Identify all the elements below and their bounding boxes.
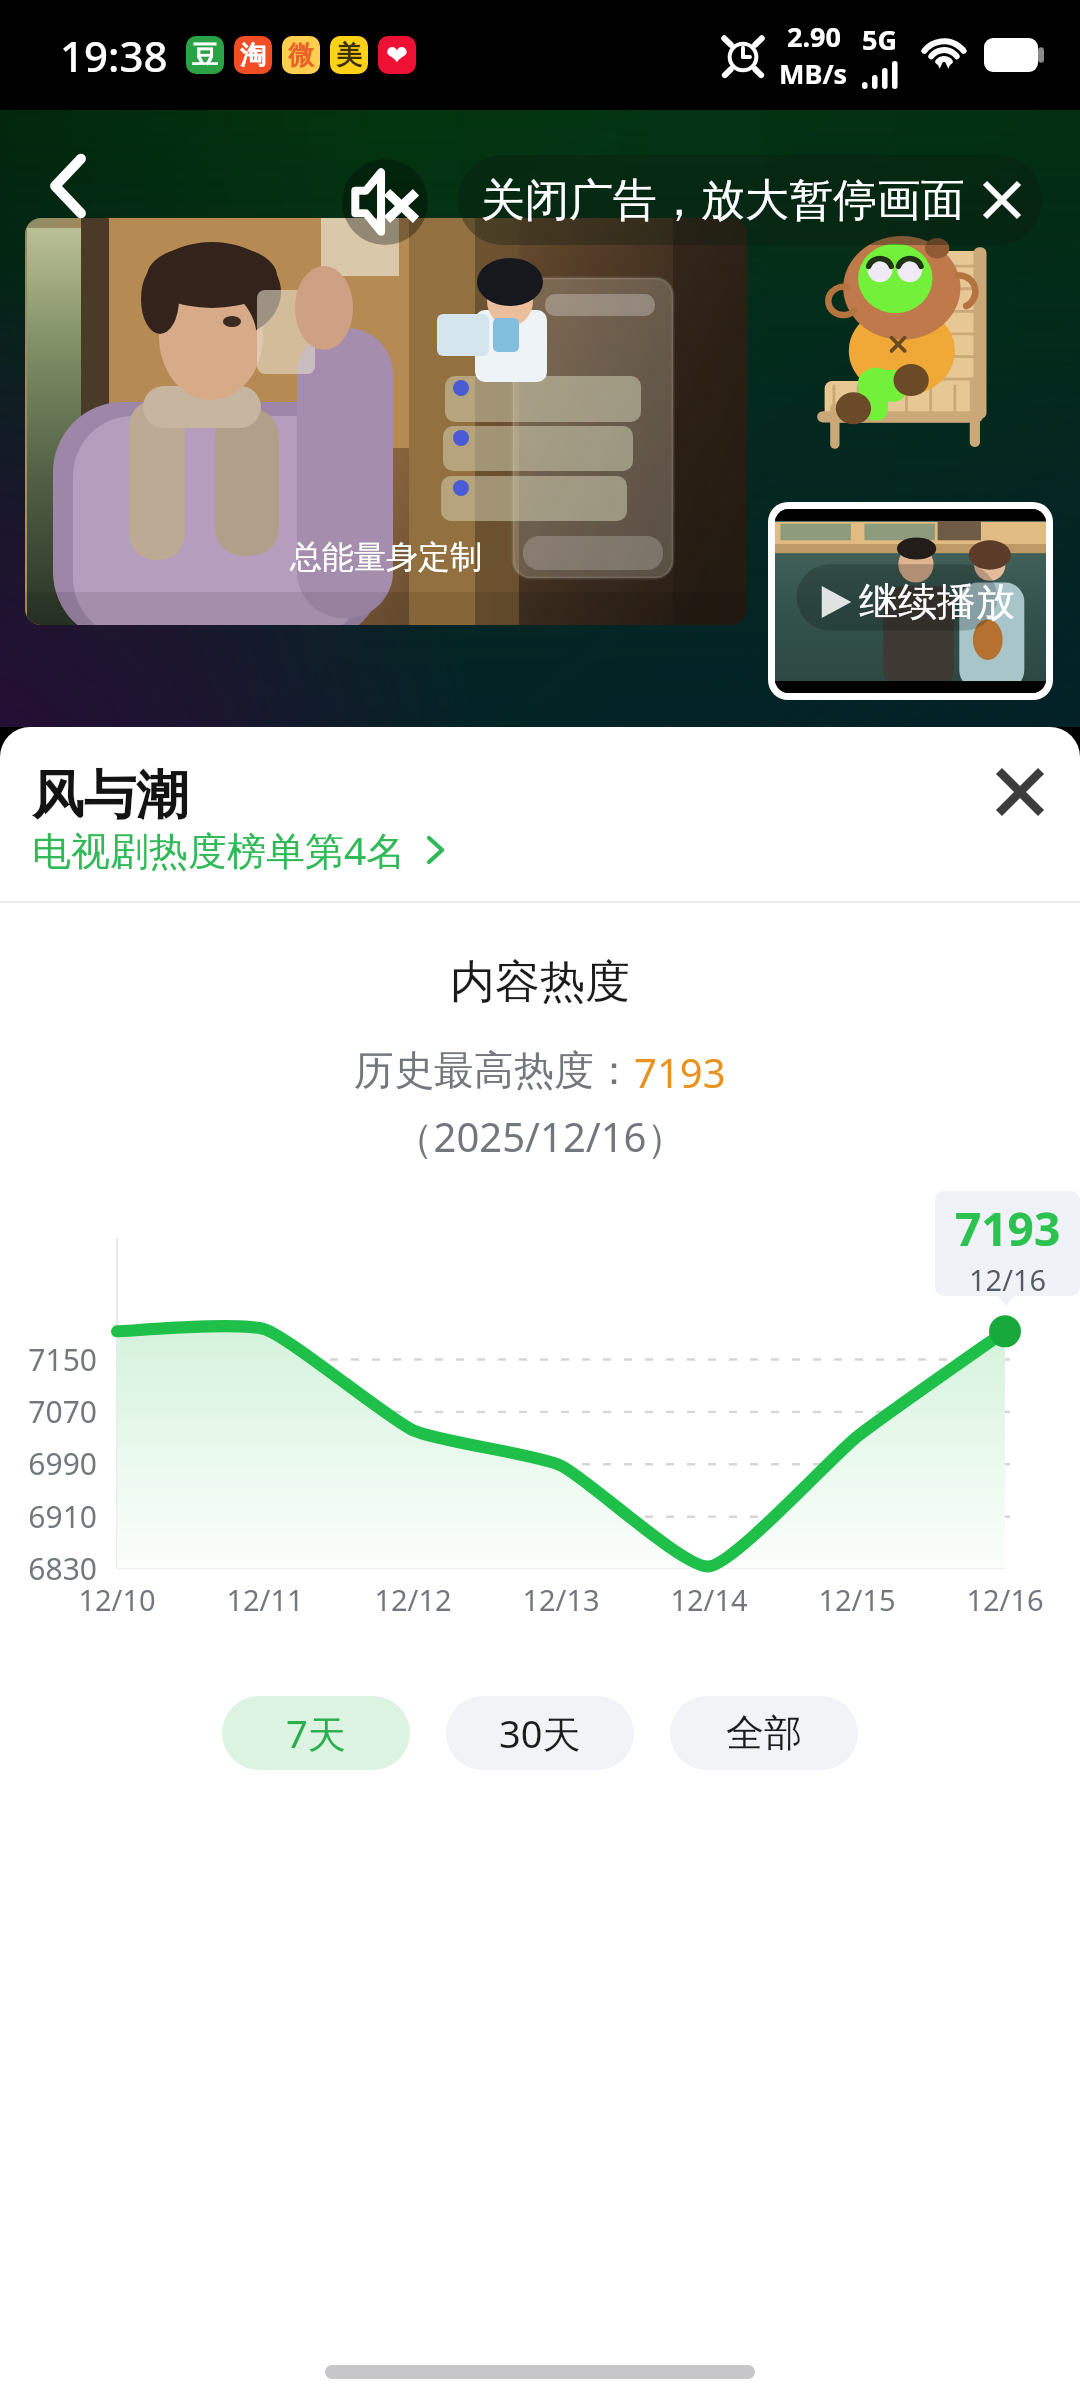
button[interactable]: 全部: [670, 1696, 858, 1770]
staticText: 12/16: [969, 1260, 1047, 1296]
staticText: 总能量身定制: [290, 537, 482, 577]
staticText: 7天: [286, 1707, 346, 1759]
staticText: 全部: [726, 1709, 802, 1757]
button[interactable]: Back: [22, 140, 114, 232]
staticText: 关闭广告，放大暂停画面: [481, 173, 965, 228]
staticText: 美: [336, 39, 362, 72]
button[interactable]: Unmute: [342, 159, 428, 245]
staticText: 7070: [0, 1391, 97, 1432]
staticText: 5G: [862, 21, 897, 58]
staticText: 淘: [240, 39, 266, 72]
button[interactable]: 7天: [222, 1696, 410, 1770]
staticText: ❤: [386, 40, 408, 70]
staticText: 风与潮: [32, 763, 188, 829]
staticText: 7150: [0, 1339, 97, 1380]
staticText: （2025/12/16）: [0, 1109, 1080, 1164]
button[interactable]: 继续播放: [768, 502, 1053, 700]
staticText: 微: [288, 39, 314, 72]
staticText: 12/12: [353, 1580, 473, 1619]
staticText: 6830: [0, 1548, 97, 1589]
staticText: 7193: [955, 1197, 1061, 1260]
staticText: 继续播放: [859, 577, 1015, 626]
staticText: MB/s: [779, 55, 848, 92]
staticText: 6990: [0, 1443, 97, 1484]
staticText: 6910: [0, 1496, 97, 1537]
button[interactable]: 关闭广告，放大暂停画面: [458, 155, 1042, 245]
staticText: 2.90: [787, 18, 841, 55]
staticText: 12/10: [57, 1580, 177, 1619]
staticText: 7193: [634, 1045, 726, 1099]
staticText: 电视剧热度榜单第4名: [32, 823, 406, 876]
staticText: 12/13: [501, 1580, 621, 1619]
staticText: 内容热度: [0, 954, 1080, 1011]
staticText: 19:38: [60, 27, 168, 84]
staticText: 12/14: [649, 1580, 769, 1619]
staticText: 豆: [192, 39, 218, 72]
staticText: 历史最高热度：: [354, 1045, 634, 1095]
staticText: 30天: [499, 1707, 581, 1759]
staticText: 12/16: [945, 1580, 1065, 1619]
button[interactable]: 30天: [446, 1696, 634, 1770]
button[interactable]: Close: [972, 744, 1068, 840]
staticText: 12/11: [205, 1580, 325, 1619]
staticText: 12/15: [797, 1580, 917, 1619]
button[interactable]: 电视剧热度榜单第4名: [32, 823, 450, 876]
